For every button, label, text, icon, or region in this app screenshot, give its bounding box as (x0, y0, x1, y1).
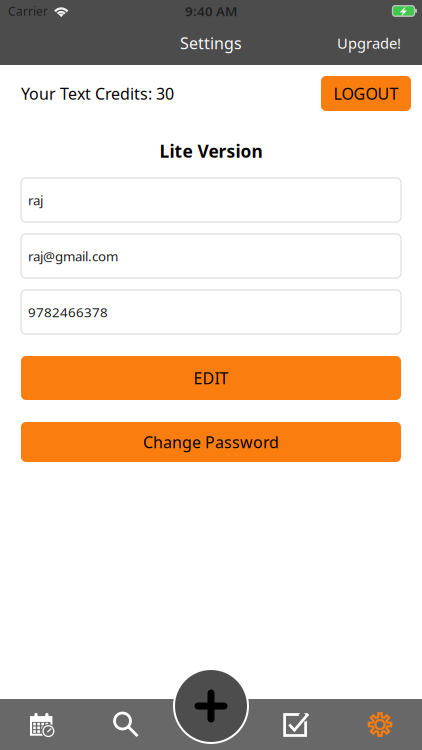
button[interactable]: Schedule (0, 699, 84, 750)
staticText: Lite Version (159, 139, 262, 162)
button[interactable]: Change Password (21, 422, 401, 462)
staticText: Carrier (8, 3, 48, 19)
button[interactable]: Completed (254, 699, 338, 750)
staticText: Upgrade! (337, 33, 401, 53)
staticText: Your Text Credits: 30 (21, 83, 174, 104)
button[interactable]: Settings (338, 699, 422, 750)
staticText: LOGOUT (333, 83, 398, 104)
button[interactable]: EDIT (21, 356, 401, 400)
staticText: EDIT (193, 367, 228, 389)
staticText: raj@gmail.com (28, 247, 118, 265)
staticText: 9:40 AM (185, 2, 237, 20)
staticText: 9782466378 (28, 303, 108, 321)
button[interactable]: Search (84, 699, 168, 750)
button[interactable]: Add (173, 668, 249, 744)
button[interactable]: LOGOUT (321, 76, 411, 111)
button[interactable]: Upgrade! (327, 25, 411, 61)
staticText: Settings (180, 32, 242, 54)
staticText: raj (28, 191, 43, 209)
staticText: Change Password (143, 431, 279, 453)
